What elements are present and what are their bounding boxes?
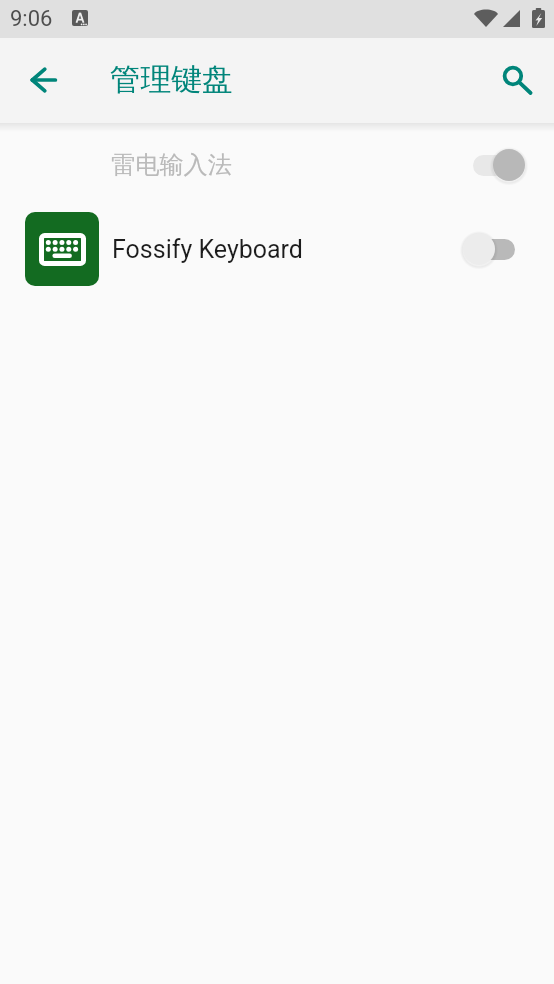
button[interactable]: 雷电输入法	[0, 122, 554, 207]
button[interactable]: Fossify Keyboard	[0, 206, 554, 291]
staticText: Fossify Keyboard	[112, 235, 303, 264]
button[interactable]: Toggle keyboard	[461, 231, 515, 267]
staticText: 管理键盘	[110, 61, 233, 100]
button[interactable]: Search	[481, 48, 546, 113]
button[interactable]: Back	[11, 48, 76, 113]
button[interactable]: Toggle keyboard	[473, 147, 527, 183]
staticText: 雷电输入法	[111, 150, 232, 180]
staticText: 9:06	[10, 6, 53, 32]
